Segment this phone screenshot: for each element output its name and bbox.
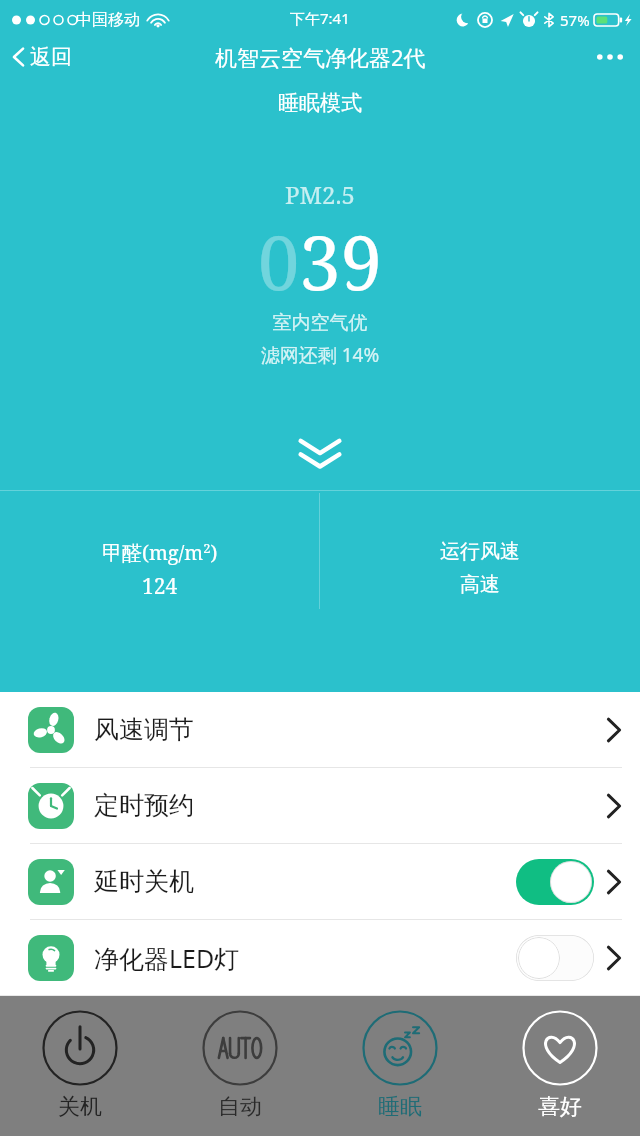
button[interactable]: 返回 — [8, 42, 76, 72]
staticText: 甲醛(mg/m2) — [102, 539, 218, 566]
staticText: 下午7:41 — [290, 8, 350, 28]
staticText: 中国移动 — [76, 10, 140, 30]
staticText: 自动 — [218, 1093, 262, 1121]
staticText: 关机 — [58, 1093, 102, 1121]
button[interactable]: 睡眠 — [320, 995, 480, 1136]
staticText: 039 — [258, 211, 383, 311]
staticText: 机智云空气净化器2代 — [215, 42, 426, 72]
staticText: 57% — [560, 10, 590, 30]
staticText: 高速 — [460, 572, 500, 597]
staticText: 返回 — [30, 44, 72, 70]
button[interactable]: 风速调节 — [0, 692, 640, 767]
button[interactable]: Toggle off — [516, 935, 594, 981]
button[interactable]: 延时关机 — [0, 844, 640, 919]
button[interactable]: Toggle on — [516, 859, 594, 905]
button[interactable]: More options — [590, 43, 630, 71]
staticText: 风速调节 — [94, 714, 194, 745]
staticText: 124 — [142, 572, 178, 601]
button[interactable]: 净化器LED灯 — [0, 920, 640, 995]
button[interactable]: Show more details — [0, 432, 640, 478]
staticText: 室内空气优 — [0, 311, 640, 335]
staticText: 睡眠模式 — [0, 90, 640, 116]
staticText: 净化器LED灯 — [94, 941, 240, 975]
staticText: 喜好 — [538, 1093, 582, 1121]
staticText: 定时预约 — [94, 790, 194, 821]
button[interactable]: 喜好 — [480, 995, 640, 1136]
staticText: 睡眠 — [378, 1093, 422, 1121]
staticText: PM2.5 — [0, 178, 640, 211]
button[interactable]: 自动 — [160, 995, 320, 1136]
button[interactable]: 定时预约 — [0, 768, 640, 843]
staticText: 延时关机 — [94, 866, 194, 897]
staticText: 滤网还剩 14% — [0, 342, 640, 368]
button[interactable]: 关机 — [0, 995, 160, 1136]
staticText: 运行风速 — [440, 539, 520, 564]
